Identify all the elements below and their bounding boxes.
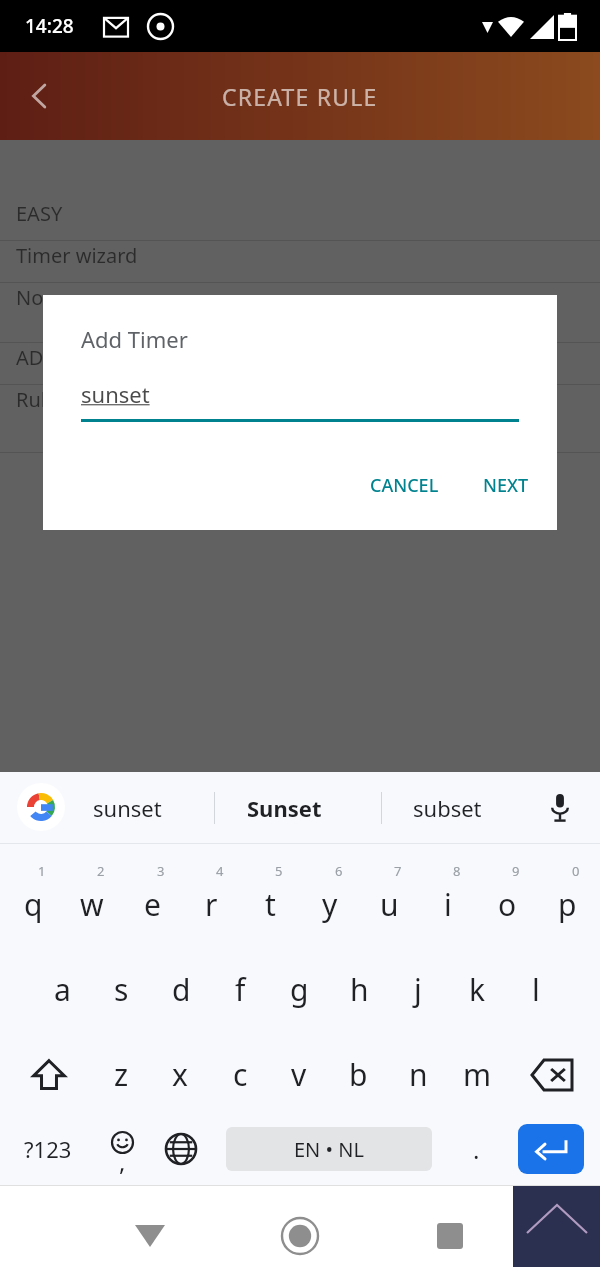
button[interactable]: Backspace xyxy=(517,1032,587,1117)
staticText: ?123 xyxy=(24,1134,72,1164)
button[interactable]: d xyxy=(152,947,210,1032)
button[interactable]: CANCEL xyxy=(356,465,453,506)
button[interactable]: k xyxy=(448,947,506,1032)
button[interactable]: 4 xyxy=(182,854,240,942)
button[interactable]: z xyxy=(92,1032,150,1117)
staticText: 1 xyxy=(38,862,46,880)
button[interactable]: h xyxy=(330,947,388,1032)
staticText: h xyxy=(350,969,369,1010)
button[interactable]: a xyxy=(33,947,91,1032)
button[interactable]: Emoji xyxy=(93,1118,151,1180)
staticText: sunset xyxy=(81,379,150,409)
staticText: e xyxy=(144,884,161,925)
button[interactable]: Expand xyxy=(513,1186,600,1267)
button[interactable]: v xyxy=(270,1032,328,1117)
staticText: Timer wizard xyxy=(16,242,138,269)
button[interactable]: . xyxy=(450,1118,502,1180)
staticText: o xyxy=(498,884,517,925)
button[interactable]: EN • NL xyxy=(226,1127,432,1171)
button[interactable]: 0 xyxy=(538,854,596,942)
staticText: 6 xyxy=(335,862,343,880)
staticText: d xyxy=(172,969,191,1010)
staticText: No xyxy=(16,284,44,311)
staticText: z xyxy=(114,1054,129,1095)
staticText: 4 xyxy=(216,862,224,880)
staticText: l xyxy=(532,969,540,1010)
button[interactable]: Google xyxy=(17,783,65,831)
button[interactable]: 7 xyxy=(360,854,418,942)
staticText: q xyxy=(24,884,43,925)
staticText: subset xyxy=(413,793,482,823)
button[interactable]: ?123 xyxy=(5,1118,91,1180)
staticText: t xyxy=(265,884,276,925)
button[interactable]: 2 xyxy=(63,854,121,942)
button[interactable]: s xyxy=(92,947,150,1032)
staticText: p xyxy=(558,884,577,925)
staticText: x xyxy=(172,1054,188,1095)
staticText: r xyxy=(205,884,218,925)
staticText: n xyxy=(409,1054,428,1095)
staticText: i xyxy=(444,884,452,925)
staticText: 3 xyxy=(157,862,165,880)
button[interactable]: Recent apps xyxy=(415,1201,485,1267)
staticText: y xyxy=(322,884,338,925)
staticText: EN • NL xyxy=(294,1136,364,1163)
staticText: s xyxy=(114,969,129,1010)
staticText: 9 xyxy=(512,862,520,880)
button[interactable]: Home xyxy=(265,1201,335,1267)
button[interactable]: 6 xyxy=(301,854,359,942)
button[interactable]: 9 xyxy=(478,854,536,942)
staticText: v xyxy=(291,1054,307,1095)
button[interactable]: Enter xyxy=(518,1124,584,1174)
staticText: CANCEL xyxy=(370,473,439,498)
button[interactable]: Back xyxy=(10,66,70,126)
staticText: m xyxy=(463,1054,492,1095)
staticText: g xyxy=(290,969,309,1010)
staticText: NEXT xyxy=(483,473,529,498)
button[interactable]: Shift xyxy=(14,1032,84,1117)
staticText: Add Timer xyxy=(81,324,188,354)
button[interactable]: b xyxy=(329,1032,387,1117)
button[interactable]: n xyxy=(389,1032,447,1117)
button[interactable]: Sunset xyxy=(247,772,322,844)
button[interactable]: 1 xyxy=(4,854,62,942)
button[interactable]: l xyxy=(507,947,565,1032)
staticText: Sunset xyxy=(247,793,322,823)
staticText: 8 xyxy=(453,862,461,880)
staticText: 14:28 xyxy=(25,13,74,39)
button[interactable]: 5 xyxy=(241,854,299,942)
staticText: c xyxy=(233,1054,248,1095)
button[interactable]: 8 xyxy=(419,854,477,942)
staticText: a xyxy=(54,969,71,1010)
staticText: AD xyxy=(16,344,44,371)
staticText: f xyxy=(235,969,246,1010)
staticText: 7 xyxy=(394,862,402,880)
button[interactable]: g xyxy=(270,947,328,1032)
staticText: , xyxy=(119,1145,126,1178)
staticText: sunset xyxy=(93,793,162,823)
button[interactable]: x xyxy=(151,1032,209,1117)
staticText: b xyxy=(349,1054,368,1095)
button[interactable]: m xyxy=(448,1032,506,1117)
button[interactable]: sunset xyxy=(93,772,162,844)
button[interactable]: NEXT xyxy=(469,465,543,506)
staticText: 5 xyxy=(275,862,283,880)
button[interactable]: j xyxy=(389,947,447,1032)
button[interactable]: c xyxy=(211,1032,269,1117)
button[interactable]: Voice input xyxy=(540,788,580,828)
staticText: 0 xyxy=(572,862,580,880)
staticText: w xyxy=(80,884,104,925)
button[interactable]: Change language xyxy=(152,1118,210,1180)
staticText: CREATE RULE xyxy=(222,81,378,112)
staticText: j xyxy=(414,969,422,1010)
button[interactable]: Hide keyboard xyxy=(115,1201,185,1267)
staticText: k xyxy=(469,969,486,1010)
button[interactable]: f xyxy=(211,947,269,1032)
button[interactable]: 3 xyxy=(123,854,181,942)
staticText: 2 xyxy=(97,862,105,880)
staticText: Rule xyxy=(16,386,58,413)
staticText: EASY xyxy=(16,200,63,227)
staticText: u xyxy=(380,884,399,925)
staticText: . xyxy=(473,1133,480,1166)
button[interactable]: subset xyxy=(413,772,482,844)
